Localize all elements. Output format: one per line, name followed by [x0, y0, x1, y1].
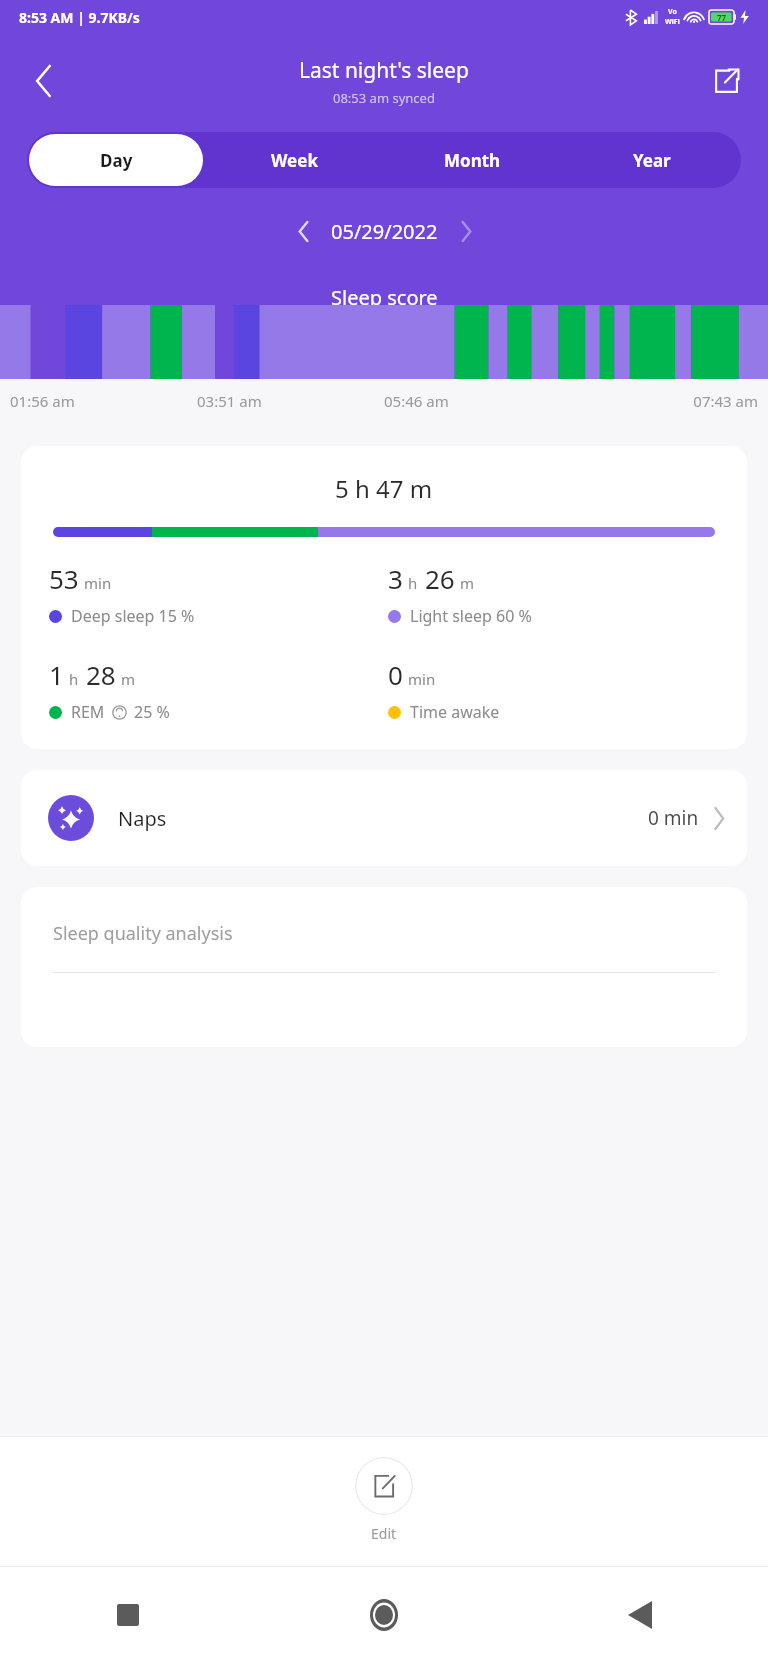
staticText: 3 [388, 561, 403, 596]
staticText: Week [271, 149, 318, 172]
staticText: 07:43 am [571, 391, 758, 411]
staticText: Time awake [410, 701, 500, 723]
staticText: 0 [388, 657, 403, 692]
staticText: 05/29/2022 [331, 218, 438, 245]
button[interactable]: Home [256, 1566, 512, 1664]
staticText: m [460, 573, 475, 593]
staticText: Year [633, 149, 671, 172]
staticText: Naps [118, 805, 167, 832]
staticText: Sleep score [331, 284, 438, 305]
button[interactable]: Previous day [281, 209, 325, 253]
staticText: 08:53 am synced [333, 89, 435, 107]
staticText: 0 min [648, 805, 699, 831]
button[interactable]: Back [16, 53, 72, 109]
staticText: 03:51 am [197, 391, 384, 411]
staticText: 05:46 am [384, 391, 571, 411]
staticText: Light sleep 60 % [410, 605, 532, 627]
button[interactable]: Recents [0, 1566, 256, 1664]
staticText: min [84, 573, 112, 593]
staticText: 1 [49, 657, 64, 692]
staticText: 26 [425, 561, 455, 596]
staticText: m [121, 669, 136, 689]
staticText: h [69, 669, 79, 689]
staticText: Sleep quality analysis [53, 921, 233, 946]
button[interactable]: Month [383, 132, 562, 188]
staticText: h [408, 573, 418, 593]
staticText: min [408, 669, 436, 689]
staticText: 5 h 47 m [335, 472, 433, 505]
staticText: 28 [86, 657, 116, 692]
button[interactable]: Year [562, 132, 741, 188]
staticText: Last night's sleep [299, 56, 469, 85]
staticText: Vo [668, 7, 677, 17]
staticText: 53 [49, 561, 79, 596]
staticText: REM [71, 701, 105, 723]
button[interactable]: Naps [21, 770, 747, 866]
button[interactable]: Share [700, 55, 752, 107]
staticText: WiFi [665, 17, 680, 27]
button[interactable]: Back [512, 1566, 768, 1664]
button[interactable]: 5 h 47 m [21, 446, 747, 749]
staticText: 8:53 AM | 9.7KB/s [19, 8, 140, 27]
staticText: Month [444, 149, 501, 172]
button[interactable]: Edit [339, 1455, 429, 1545]
staticText: 01:56 am [10, 391, 197, 411]
staticText: Day [100, 149, 133, 172]
button[interactable]: Week [205, 132, 383, 188]
button[interactable]: Sleep quality analysis [21, 887, 747, 1047]
button[interactable]: Day [29, 134, 203, 186]
staticText: Deep sleep 15 % [71, 605, 195, 627]
staticText: Edit [371, 1524, 397, 1543]
staticText: 77 [717, 12, 727, 23]
button[interactable]: Next day [444, 209, 488, 253]
staticText: 25 % [134, 701, 170, 723]
